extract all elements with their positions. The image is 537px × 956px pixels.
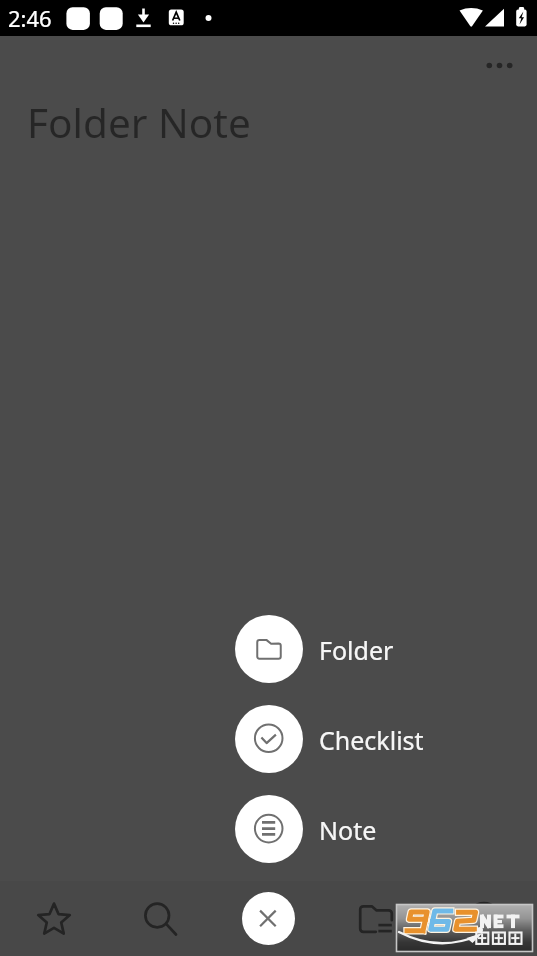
button[interactable]: Search xyxy=(132,891,188,947)
button[interactable]: Note xyxy=(235,795,377,863)
staticText: Folder Note xyxy=(27,95,251,150)
staticText: Note xyxy=(319,813,377,847)
staticText: 2:46 xyxy=(8,3,52,33)
button[interactable]: Account xyxy=(456,891,512,947)
button[interactable]: Favorites xyxy=(26,891,82,947)
button[interactable]: Close menu xyxy=(242,892,295,945)
staticText: Folder xyxy=(319,633,394,667)
button[interactable]: Checklist xyxy=(235,705,424,773)
button[interactable]: More options xyxy=(477,43,522,88)
staticText: Checklist xyxy=(319,723,424,757)
button[interactable]: Folder xyxy=(235,615,394,683)
button[interactable]: Folders xyxy=(348,891,404,947)
